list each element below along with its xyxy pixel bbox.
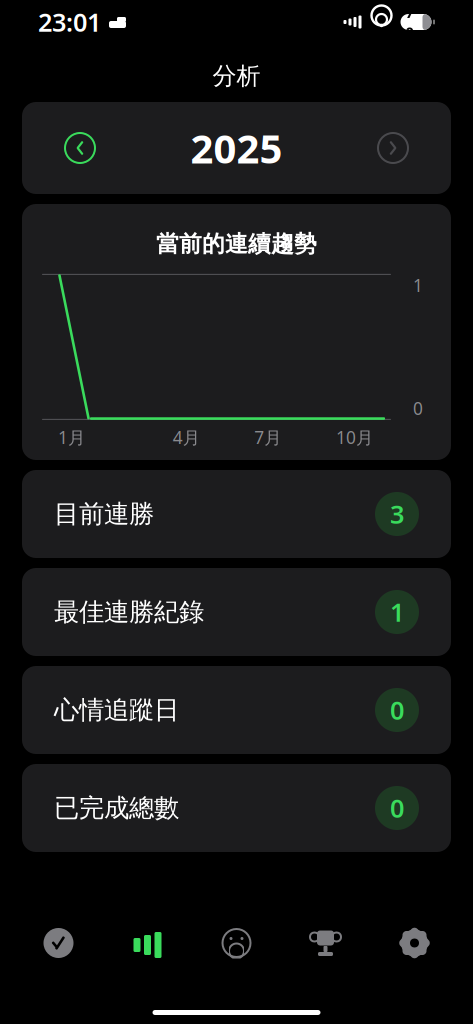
button[interactable]: 上一年: [58, 126, 102, 170]
staticText: 23:01: [38, 5, 101, 39]
staticText: 1月: [58, 426, 85, 449]
button[interactable]: 已完成總數: [22, 764, 451, 852]
staticText: 2025: [190, 121, 282, 174]
button[interactable]: 設定: [370, 915, 459, 971]
button[interactable]: 目前連勝: [22, 470, 451, 558]
staticText: 目前連勝: [54, 498, 154, 529]
staticText: 0: [413, 397, 423, 420]
staticText: 0: [390, 693, 404, 727]
button[interactable]: 習慣: [14, 915, 103, 971]
staticText: 4月: [173, 426, 200, 449]
button[interactable]: 心情: [192, 915, 281, 971]
button[interactable]: 成就: [281, 915, 370, 971]
button[interactable]: 分析: [103, 915, 192, 971]
staticText: 0: [390, 791, 404, 825]
staticText: 1: [390, 595, 404, 629]
staticText: 1: [413, 274, 423, 297]
staticText: 心情追蹤日: [54, 694, 179, 725]
staticText: 最佳連勝紀錄: [54, 596, 204, 627]
staticText: 70: [405, 2, 413, 41]
staticText: 10月: [336, 426, 373, 449]
staticText: 3: [390, 497, 404, 531]
staticText: 當前的連續趨勢: [156, 230, 317, 258]
button[interactable]: 下一年: [371, 126, 415, 170]
staticText: 已完成總數: [54, 792, 179, 823]
staticText: 分析: [212, 61, 260, 91]
staticText: 7月: [254, 426, 281, 449]
button[interactable]: 最佳連勝紀錄: [22, 568, 451, 656]
button[interactable]: 心情追蹤日: [22, 666, 451, 754]
